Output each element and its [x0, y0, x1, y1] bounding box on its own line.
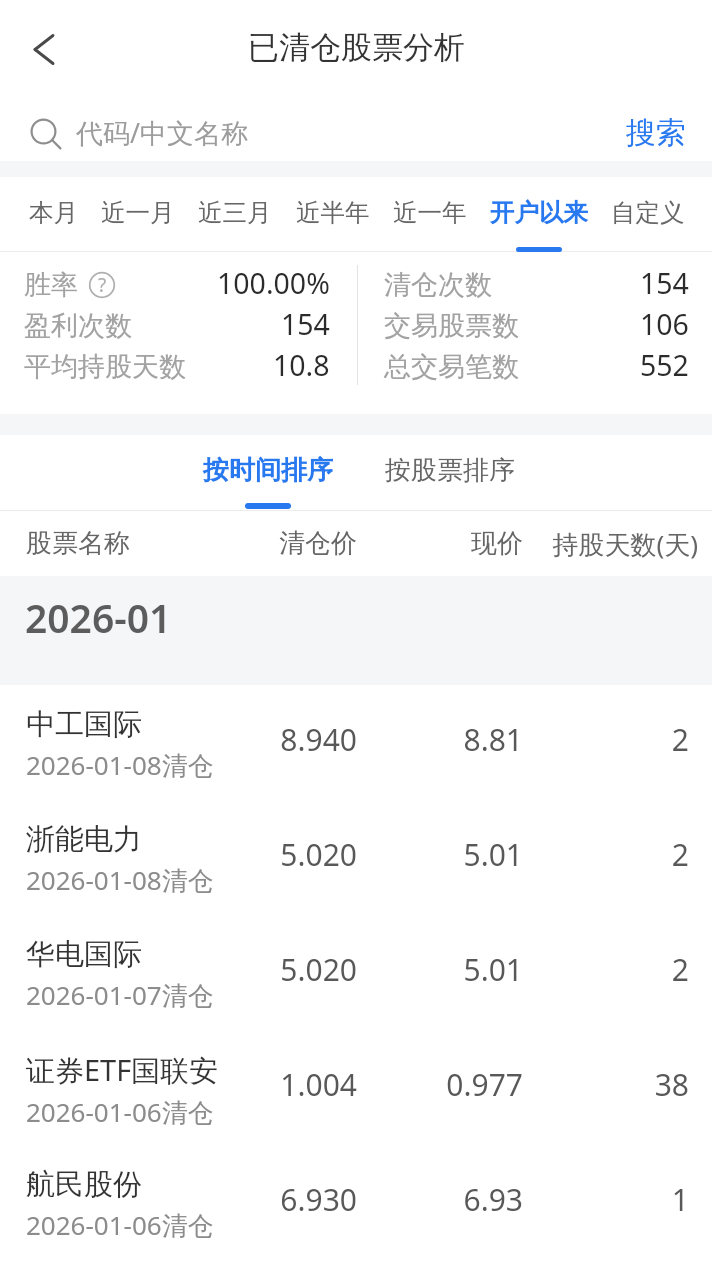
staticText: 1.004: [224, 1064, 357, 1105]
staticText: 8.940: [224, 719, 357, 760]
staticText: 38: [523, 1064, 689, 1105]
staticText: 154: [640, 264, 689, 303]
staticText: 清仓价: [224, 527, 357, 560]
staticText: 清仓次数: [384, 268, 492, 302]
staticText: 2: [523, 834, 689, 875]
staticText: 6.930: [224, 1179, 357, 1220]
button[interactable]: 近三月: [195, 177, 275, 252]
button[interactable]: 中工国际: [0, 685, 712, 800]
staticText: 近半年: [296, 197, 370, 228]
staticText: 近一年: [393, 197, 467, 228]
staticText: 已清仓股票分析: [248, 28, 465, 67]
button[interactable]: 按时间排序: [177, 435, 359, 509]
button[interactable]: 华电国际: [0, 915, 712, 1030]
button[interactable]: 自定义: [608, 177, 688, 252]
button[interactable]: Back: [11, 16, 75, 80]
button[interactable]: 按股票排序: [359, 435, 541, 509]
staticText: 154: [281, 305, 330, 344]
staticText: 6.93: [357, 1179, 523, 1220]
staticText: 开户以来: [490, 197, 588, 228]
staticText: 2026-01-06清仓: [26, 1207, 214, 1243]
staticText: 106: [640, 305, 689, 344]
staticText: 按时间排序: [203, 454, 333, 487]
staticText: 自定义: [611, 197, 685, 228]
button[interactable]: 近一年: [390, 177, 470, 252]
button[interactable]: 航民股份: [0, 1145, 712, 1260]
staticText: 华电国际: [26, 936, 142, 973]
staticText: 股票名称: [26, 527, 224, 560]
staticText: 近一月: [101, 197, 175, 228]
staticText: 代码/中文名称: [76, 114, 249, 151]
staticText: 2026-01-06清仓: [26, 1094, 214, 1130]
staticText: 浙能电力: [26, 821, 142, 858]
button[interactable]: 近半年: [293, 177, 373, 252]
button[interactable]: 开户以来: [487, 177, 591, 252]
staticText: 2: [523, 719, 689, 760]
button[interactable]: 本月: [26, 177, 81, 252]
staticText: 现价: [357, 527, 523, 560]
staticText: 2026-01: [25, 591, 172, 644]
staticText: 552: [640, 346, 689, 385]
staticText: 证券ETF国联安: [26, 1050, 219, 1090]
staticText: 2026-01-08清仓: [26, 747, 214, 783]
staticText: 2: [523, 949, 689, 990]
staticText: 近三月: [198, 197, 272, 228]
staticText: 1: [523, 1179, 689, 1220]
button[interactable]: 浙能电力: [0, 800, 712, 915]
staticText: 平均持股天数: [24, 350, 186, 384]
staticText: 本月: [29, 197, 78, 228]
staticText: 总交易笔数: [384, 350, 519, 384]
staticText: 2026-01-08清仓: [26, 862, 214, 898]
staticText: 5.01: [357, 834, 523, 875]
staticText: 2026-01-07清仓: [26, 977, 214, 1013]
button[interactable]: 证券ETF国联安: [0, 1030, 712, 1145]
button[interactable]: 搜索: [624, 104, 688, 154]
staticText: 8.81: [357, 719, 523, 760]
staticText: 5.020: [224, 949, 357, 990]
staticText: 盈利次数: [24, 309, 132, 343]
staticText: 10.8: [273, 346, 330, 385]
staticText: 胜率: [24, 268, 78, 302]
staticText: 持股天数(天): [532, 526, 698, 562]
staticText: 100.00%: [217, 264, 330, 303]
staticText: 航民股份: [26, 1166, 142, 1203]
button[interactable]: 近一月: [98, 177, 178, 252]
button[interactable]: 代码/中文名称: [25, 96, 624, 161]
staticText: 5.01: [357, 949, 523, 990]
staticText: 交易股票数: [384, 309, 519, 343]
staticText: 中工国际: [26, 706, 142, 743]
staticText: 5.020: [224, 834, 357, 875]
staticText: 按股票排序: [385, 454, 515, 487]
staticText: 0.977: [357, 1064, 523, 1105]
staticText: ?: [98, 272, 107, 297]
staticText: 搜索: [626, 114, 686, 152]
